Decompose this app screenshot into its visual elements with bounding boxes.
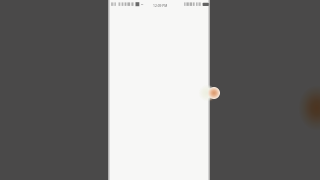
staticText: 12:09 PM [153, 3, 168, 7]
button[interactable]: Action [196, 82, 210, 104]
